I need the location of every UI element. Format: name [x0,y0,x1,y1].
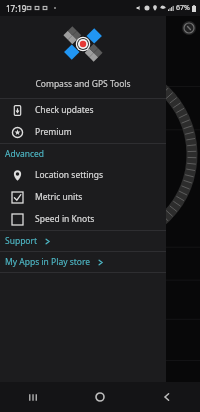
staticText: Premium [35,126,72,138]
button[interactable]: Support [0,231,166,251]
staticText: 17:19 [6,3,27,14]
staticText: Compass and GPS Tools [35,78,131,90]
button[interactable]: My Apps in Play store [0,252,166,272]
button[interactable]: Metric units [0,186,166,208]
staticText: 67% [176,3,190,13]
staticText: My Apps in Play store [5,256,91,268]
staticText: Check updates [35,104,94,116]
button[interactable]: Check updates [0,99,166,121]
button[interactable]: Back [133,382,200,412]
button[interactable]: Recents [0,382,66,412]
staticText: Speed in Knots [35,213,95,225]
button[interactable]: Compass [182,21,196,35]
staticText: Metric units [35,191,83,203]
button[interactable]: Home [66,382,133,412]
button[interactable]: Premium [0,121,166,143]
button[interactable]: Location settings [0,164,166,186]
staticText: Support [5,235,38,247]
button[interactable]: Speed in Knots [0,208,166,230]
staticText: Advanced [5,148,45,160]
staticText: Location settings [35,169,104,181]
